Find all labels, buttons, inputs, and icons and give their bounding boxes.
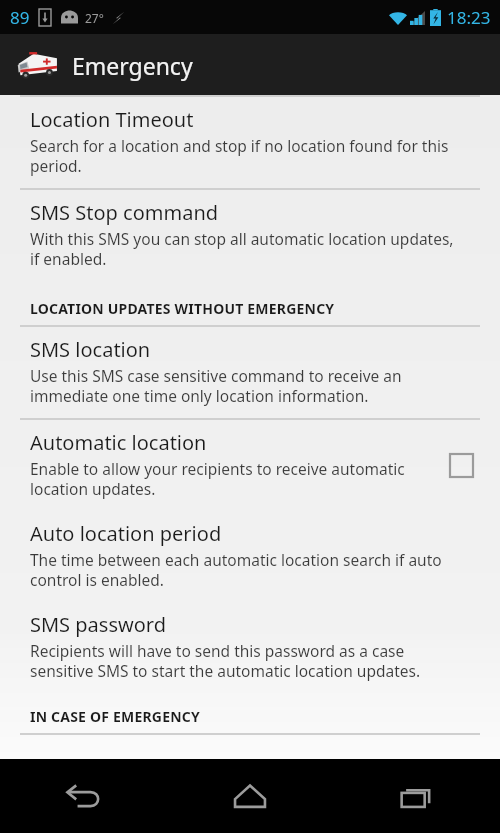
button[interactable]: Home <box>166 759 333 833</box>
staticText: 18:23 <box>447 6 491 29</box>
button[interactable]: SMS password <box>0 602 500 693</box>
staticText: Location Timeout <box>30 106 194 133</box>
staticText: The time between each automatic location… <box>30 549 460 591</box>
button[interactable]: SMS location <box>0 327 500 418</box>
staticText: SMS password <box>30 611 166 638</box>
staticText: Recipients will have to send this passwo… <box>30 640 460 682</box>
button[interactable]: Location Timeout <box>0 97 500 188</box>
button[interactable]: Automatic location <box>0 420 500 511</box>
button[interactable]: Auto location period <box>0 511 500 602</box>
staticText: Search for a location and stop if no loc… <box>30 135 460 177</box>
staticText: 27° <box>85 10 104 26</box>
staticText: Emergency <box>72 50 193 81</box>
staticText: Auto location period <box>30 520 222 547</box>
button[interactable]: Automatic location toggle <box>438 442 484 488</box>
other: Ambulance <box>16 48 60 82</box>
button[interactable]: Recent apps <box>333 759 500 833</box>
staticText: IN CASE OF EMERGENCY <box>30 707 200 726</box>
staticText: SMS location <box>30 336 151 363</box>
staticText: Use this SMS case sensitive command to r… <box>30 365 460 407</box>
button[interactable]: Back <box>0 759 166 833</box>
staticText: 89 <box>10 6 30 29</box>
staticText: Automatic location <box>30 429 207 456</box>
staticText: LOCATION UPDATES WITHOUT EMERGENCY <box>30 299 335 318</box>
staticText: SMS Stop command <box>30 199 219 226</box>
staticText: Enable to allow your recipients to recei… <box>30 458 428 500</box>
staticText: With this SMS you can stop all automatic… <box>30 228 460 270</box>
button[interactable]: SMS Stop command <box>0 190 500 281</box>
